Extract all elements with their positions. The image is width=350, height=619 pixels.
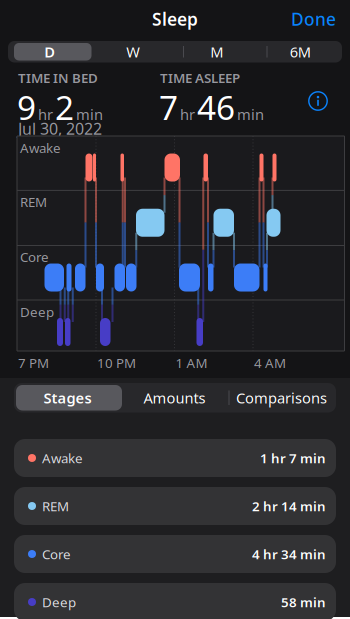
staticText: Awake (20, 139, 61, 157)
staticText: Deep (20, 303, 54, 321)
button[interactable]: W (91, 41, 175, 62)
staticText: 6M (290, 42, 311, 61)
staticText: 46 (197, 85, 235, 129)
staticText: 2 (55, 85, 74, 129)
button[interactable]: Done (291, 7, 336, 30)
staticText: 4 AM (254, 354, 286, 372)
staticText: Sleep (152, 7, 198, 30)
staticText: REM (20, 193, 47, 211)
staticText: Core (42, 545, 71, 563)
button[interactable] (308, 91, 328, 111)
button[interactable]: Core (14, 535, 336, 573)
staticText: hr (38, 105, 53, 124)
staticText: 9 (17, 85, 36, 129)
staticText: 58 min (281, 593, 326, 611)
button[interactable]: REM (14, 487, 336, 525)
staticText: Comparisons (236, 388, 327, 407)
staticText: Done (291, 7, 336, 30)
button[interactable]: D (8, 41, 91, 62)
staticText: min (237, 105, 264, 124)
button[interactable]: Stages (14, 383, 121, 412)
staticText: Awake (42, 449, 83, 467)
staticText: M (210, 42, 223, 61)
staticText: min (76, 105, 103, 124)
button[interactable]: Awake (14, 439, 336, 477)
staticText: 2 hr 14 min (252, 497, 326, 515)
staticText: W (126, 42, 140, 61)
staticText: Core (20, 248, 49, 266)
staticText: Stages (43, 388, 91, 407)
button[interactable]: Comparisons (228, 383, 335, 412)
button[interactable]: Deep (14, 583, 336, 619)
staticText: 7 PM (18, 354, 49, 372)
staticText: Deep (42, 593, 76, 611)
button[interactable]: M (175, 41, 258, 62)
staticText: TIME IN BED (18, 69, 98, 87)
staticText: 7 (159, 85, 178, 129)
button[interactable]: Amounts (121, 383, 228, 412)
staticText: hr (180, 105, 195, 124)
staticText: Amounts (143, 388, 205, 407)
staticText: 4 hr 34 min (252, 545, 326, 563)
staticText: 10 PM (97, 354, 136, 372)
button[interactable]: 6M (258, 41, 342, 62)
staticText: Jul 30, 2022 (18, 118, 102, 139)
staticText: 1 AM (175, 354, 207, 372)
staticText: 1 hr 7 min (260, 449, 326, 467)
staticText: TIME ASLEEP (160, 69, 240, 87)
staticText: REM (42, 497, 69, 515)
staticText: D (44, 42, 55, 61)
